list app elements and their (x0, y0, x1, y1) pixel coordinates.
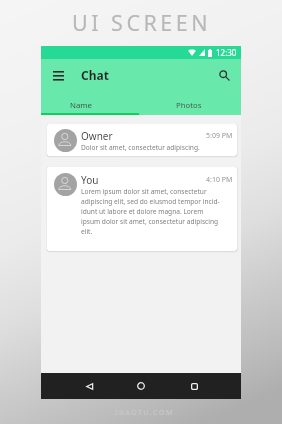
staticText: Photos (176, 100, 202, 111)
button[interactable]: Photos (139, 91, 241, 115)
staticText: 12:30 (216, 47, 237, 58)
staticText: IBAOTU.COM (115, 407, 174, 417)
staticText: Chat (81, 67, 109, 83)
button[interactable]: Owner (47, 124, 237, 156)
staticText: UI SCREEN (72, 8, 212, 37)
button[interactable]: Name (41, 91, 139, 115)
button[interactable]: Search (211, 62, 237, 88)
staticText: Name (70, 100, 92, 111)
staticText: 5:09 PM (206, 131, 233, 141)
staticText: Lorem ipsum dolor sit amet, consectetur … (81, 187, 221, 236)
button[interactable]: Menu (45, 62, 71, 88)
button[interactable]: Home (131, 376, 151, 396)
staticText: You (81, 173, 99, 187)
staticText: Dolor sit amet, consectetur adipiscing. (81, 143, 231, 152)
staticText: 4:10 PM (206, 175, 233, 185)
staticText: Owner (81, 129, 113, 143)
button[interactable]: You (47, 167, 237, 251)
button[interactable]: Recents (184, 376, 204, 396)
button[interactable]: Back (79, 376, 99, 396)
